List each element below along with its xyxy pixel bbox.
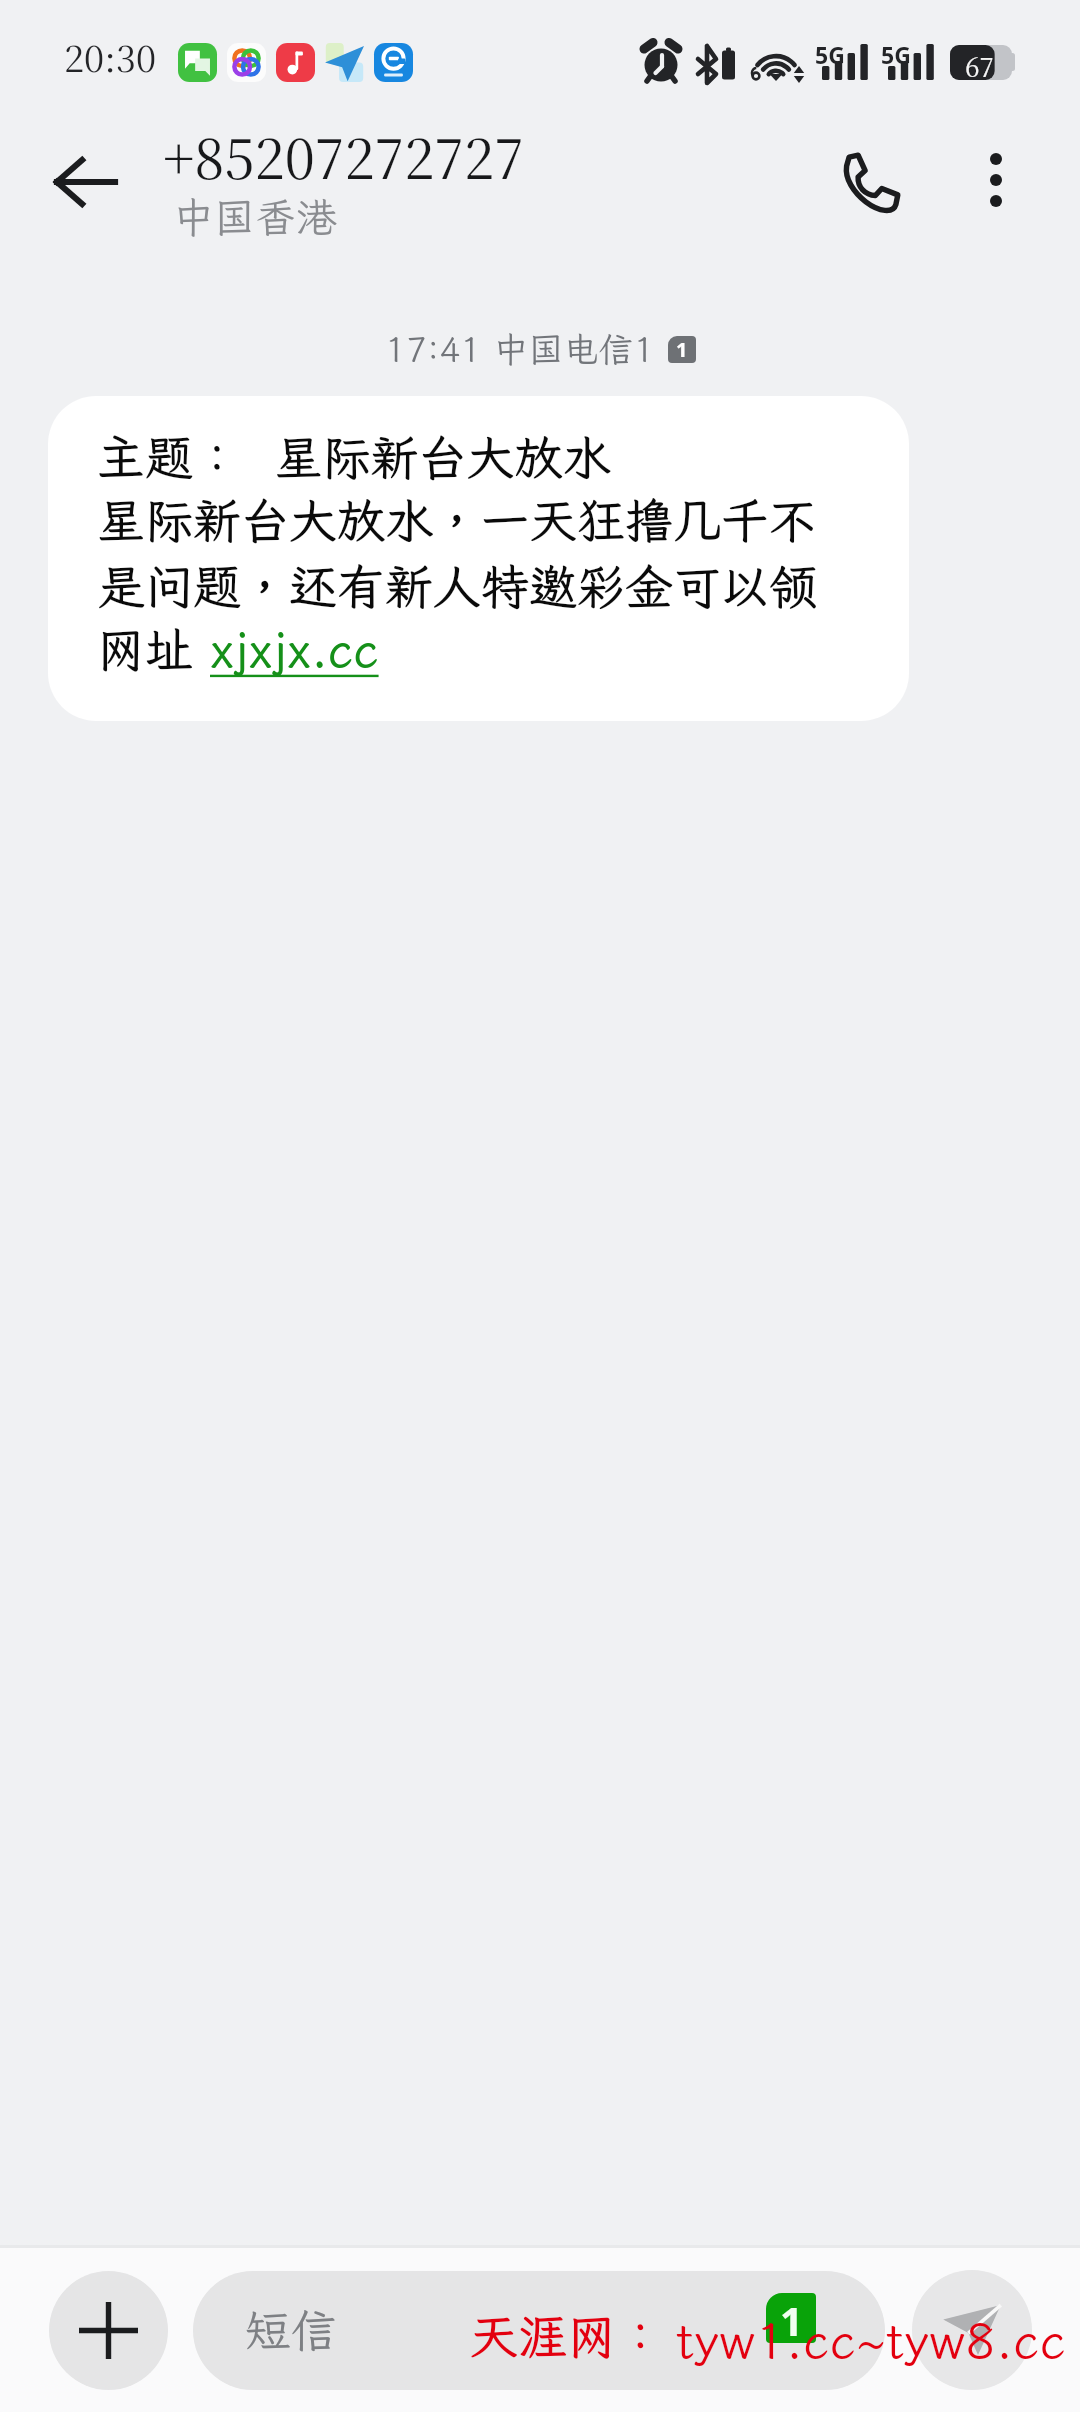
- staticText: 1: [676, 336, 688, 363]
- button[interactable]: xjxjx.cc: [210, 617, 379, 680]
- staticText: 5G: [815, 39, 845, 70]
- button[interactable]: More options: [940, 124, 1052, 236]
- staticText: 天涯网：: [469, 2303, 666, 2368]
- staticText: +85207272727: [163, 117, 524, 195]
- staticText: 短信: [245, 2300, 337, 2361]
- staticText: 67: [965, 47, 994, 84]
- staticText: 1: [780, 2293, 803, 2343]
- staticText: 中国香港: [173, 190, 337, 244]
- staticText: 17:41 中国电信1: [385, 326, 655, 372]
- staticText: 网址: [97, 617, 210, 680]
- staticText: 星际新台大放水，一天狂撸几千不是问题，还有新人特邀彩金可以领: [97, 488, 843, 617]
- button[interactable]: 主题： 星际新台大放水: [48, 396, 909, 721]
- staticText: 20:30: [64, 31, 157, 83]
- button[interactable]: Back: [22, 120, 146, 244]
- staticText: 主题： 星际新台大放水: [97, 425, 611, 488]
- staticText: 5G: [881, 39, 911, 70]
- button[interactable]: 短信: [193, 2271, 885, 2390]
- button[interactable]: Add attachment: [49, 2271, 168, 2390]
- button[interactable]: Call: [805, 120, 933, 248]
- staticText: tyw1.cc~tyw8.cc: [676, 2306, 1066, 2372]
- button[interactable]: Send: [912, 2270, 1032, 2390]
